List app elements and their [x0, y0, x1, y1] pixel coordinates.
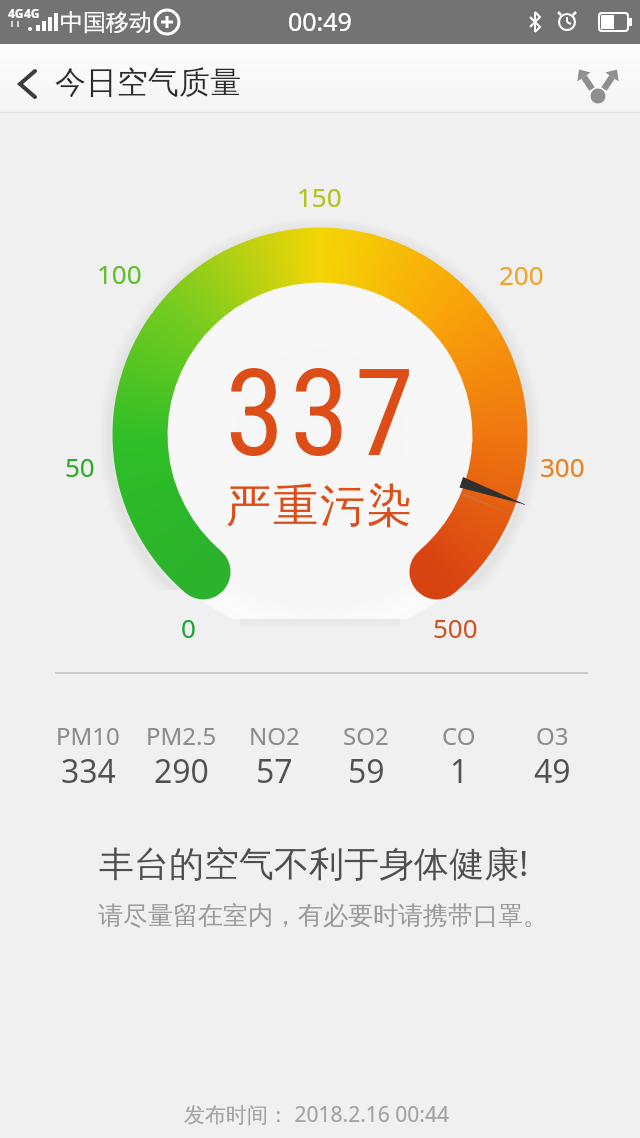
- staticText: 4G: [8, 5, 24, 21]
- staticText: 50: [65, 449, 95, 484]
- staticText: 150: [297, 179, 342, 214]
- staticText: 1: [450, 749, 469, 793]
- staticText: 丰台的空气不利于身体健康!: [99, 839, 529, 887]
- staticText: 今日空气质量: [55, 63, 241, 102]
- staticText: 200: [499, 257, 544, 292]
- staticText: CO: [442, 719, 476, 752]
- staticText: 290: [154, 749, 209, 793]
- staticText: NO2: [249, 719, 300, 752]
- button[interactable]: [0, 44, 56, 113]
- staticText: PM2.5: [146, 719, 217, 752]
- staticText: PM10: [56, 719, 120, 752]
- staticText: 中国移动: [60, 8, 152, 37]
- staticText: 0: [181, 610, 196, 645]
- staticText: 337: [225, 343, 420, 463]
- staticText: 严重污染: [225, 478, 413, 535]
- staticText: 500: [433, 610, 478, 645]
- staticText: 334: [61, 749, 116, 793]
- staticText: SO2: [343, 719, 389, 752]
- staticText: 59: [348, 749, 385, 793]
- staticText: 49: [534, 749, 571, 793]
- staticText: 300: [540, 449, 585, 484]
- button[interactable]: [560, 44, 640, 113]
- staticText: 发布时间： 2018.2.16 00:44: [184, 1100, 449, 1129]
- staticText: O3: [536, 719, 569, 752]
- staticText: 4G: [24, 5, 40, 21]
- staticText: 57: [256, 749, 293, 793]
- staticText: 请尽量留在室内，有必要时请携带口罩。: [98, 900, 548, 931]
- staticText: 100: [97, 256, 142, 291]
- staticText: 00:49: [288, 4, 352, 38]
